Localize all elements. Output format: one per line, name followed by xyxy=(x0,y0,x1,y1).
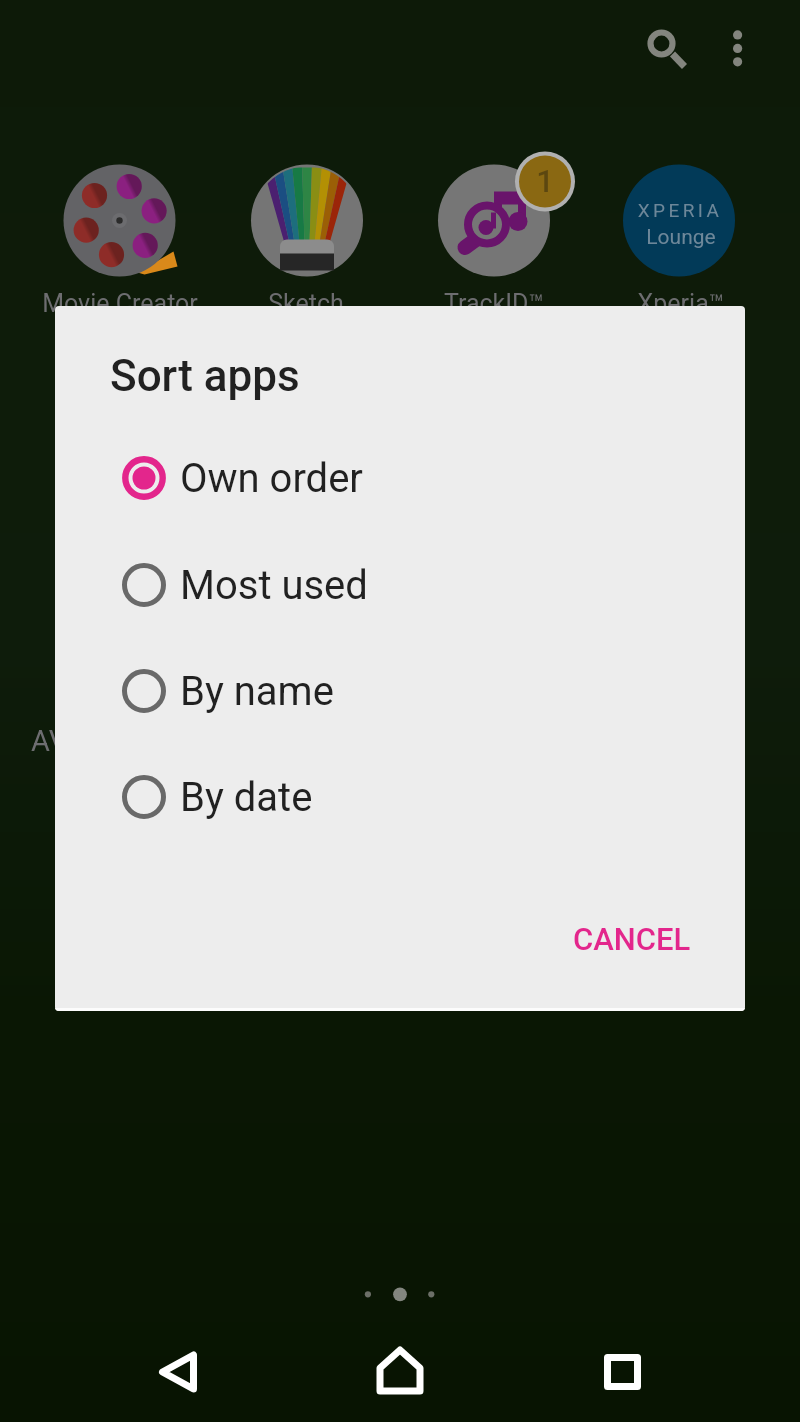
staticText: By date xyxy=(180,774,313,821)
staticText: CANCEL xyxy=(573,921,691,957)
staticText: AV xyxy=(31,724,68,758)
button[interactable]: CANCEL xyxy=(545,893,719,985)
staticText: Own order xyxy=(180,455,363,502)
button[interactable]: Recents xyxy=(533,1322,800,1422)
staticText: Sort apps xyxy=(110,350,300,402)
staticText: Xperia™ xyxy=(571,289,791,318)
staticText: Most used xyxy=(180,562,368,609)
staticText: By name xyxy=(180,668,334,715)
staticText: Lounge xyxy=(571,225,791,250)
button[interactable]: By date xyxy=(55,744,745,850)
button[interactable]: Most used xyxy=(55,532,745,638)
staticText: Movie Creator xyxy=(10,289,230,318)
staticText: 1 xyxy=(435,163,655,199)
staticText: Sketch xyxy=(196,289,416,318)
button[interactable]: Home xyxy=(266,1322,533,1422)
staticText: XPERIA xyxy=(570,199,790,221)
button[interactable]: Own order xyxy=(55,425,745,531)
button[interactable]: By name xyxy=(55,638,745,744)
button[interactable]: Back xyxy=(0,1322,266,1422)
staticText: TrackID™ xyxy=(384,289,604,318)
